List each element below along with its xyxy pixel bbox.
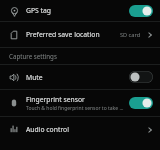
staticText: Fingerprint sensor [26, 95, 85, 104]
other: Audio control [7, 122, 21, 136]
other: Fingerprint sensor [7, 96, 21, 110]
staticText: Touch & hold fingerprint sensor to take … [26, 105, 125, 112]
button[interactable]: GPS tag [0, 0, 160, 21]
button[interactable]: On [129, 5, 153, 17]
staticText: Capture settings [9, 52, 57, 60]
other: Preferred save location [7, 28, 21, 42]
staticText: Audio control [26, 125, 144, 134]
button[interactable]: Fingerprint sensor [0, 90, 160, 116]
button[interactable]: Off [129, 71, 153, 83]
staticText: Preferred save location [26, 30, 120, 39]
staticText: Mute [26, 73, 43, 82]
staticText: GPS tag [26, 6, 52, 15]
button[interactable]: Preferred save location [0, 22, 160, 47]
other: GPS tag [7, 4, 21, 18]
button[interactable]: Mute [0, 65, 160, 89]
button[interactable]: On [129, 97, 153, 109]
other: Mute [7, 70, 21, 84]
button[interactable]: Audio control [0, 117, 160, 141]
staticText: SD card [120, 31, 141, 39]
